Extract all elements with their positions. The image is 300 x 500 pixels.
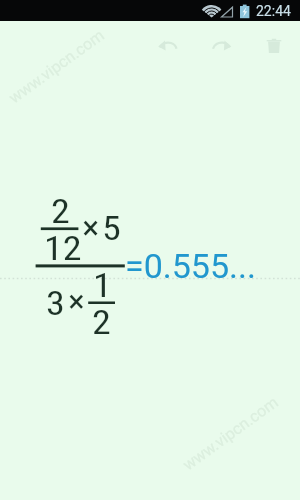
staticText: 1 [93,265,112,305]
staticText: 2 [51,191,70,231]
staticText: =0.555... [125,246,256,286]
staticText: × [82,208,100,247]
button[interactable]: Redo [206,30,238,62]
staticText: 3 [46,283,65,323]
staticText: 12 [44,228,82,268]
staticText: 2 [92,302,111,342]
staticText: × [68,282,86,320]
button[interactable]: Undo [152,30,184,62]
staticText: 22:44 [256,3,291,19]
staticText: 5 [102,208,121,248]
button[interactable]: Clear [258,30,290,62]
